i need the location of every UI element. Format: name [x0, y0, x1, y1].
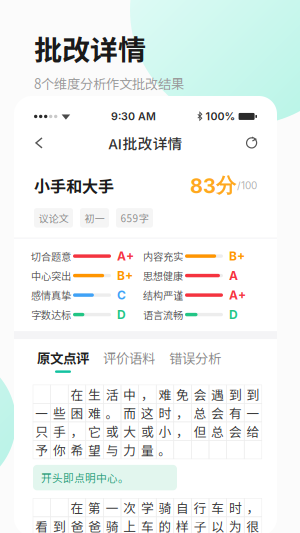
staticText: 爸: [88, 517, 101, 533]
staticText: 只: [35, 422, 48, 440]
staticText: D: [117, 307, 126, 322]
staticText: 些: [53, 403, 66, 422]
staticText: 困: [70, 403, 83, 422]
button[interactable]: 评价语料: [96, 348, 162, 373]
staticText: 自: [176, 498, 189, 517]
staticText: 力: [123, 440, 136, 459]
staticText: 评价语料: [103, 348, 155, 367]
staticText: 或: [141, 422, 154, 440]
staticText: 看: [35, 517, 48, 533]
staticText: 手: [53, 422, 66, 440]
staticText: 与: [106, 440, 119, 459]
staticText: 活: [106, 385, 119, 403]
staticText: 。: [158, 440, 171, 459]
staticText: 的: [158, 517, 171, 533]
staticText: 有: [229, 403, 242, 422]
staticText: 感情真挚: [31, 288, 71, 302]
button[interactable]: 错误分析: [162, 348, 228, 373]
staticText: 到: [229, 385, 242, 403]
staticText: 难: [158, 385, 171, 403]
staticText: 生: [88, 385, 101, 403]
staticText: ，: [176, 403, 189, 422]
staticText: B+: [229, 249, 245, 263]
staticText: 会: [211, 403, 224, 422]
staticText: ，: [141, 385, 154, 403]
staticText: 语言流畅: [143, 307, 183, 322]
staticText: 到: [53, 517, 66, 533]
staticText: 在: [70, 498, 83, 517]
staticText: A: [229, 268, 238, 283]
staticText: 你: [53, 440, 66, 459]
staticText: 它: [88, 422, 101, 440]
staticText: 切合题意: [31, 249, 71, 263]
staticText: 骑: [106, 517, 119, 533]
staticText: 而: [123, 403, 136, 422]
staticText: 大: [123, 422, 136, 440]
staticText: 思想健康: [143, 268, 183, 283]
staticText: 一: [106, 498, 119, 517]
staticText: 但: [194, 422, 207, 440]
staticText: 遇: [211, 385, 224, 403]
staticText: 小手和大手: [34, 174, 114, 197]
staticText: 上: [123, 517, 136, 533]
staticText: 会: [194, 385, 207, 403]
staticText: 结构严谨: [143, 288, 183, 302]
staticText: 100%: [206, 110, 236, 123]
staticText: ，: [176, 422, 189, 440]
staticText: 中心突出: [31, 268, 71, 283]
staticText: 批改详情: [34, 28, 146, 68]
staticText: 小: [158, 422, 171, 440]
staticText: 一: [246, 403, 259, 422]
staticText: 望: [88, 440, 101, 459]
staticText: 时: [158, 403, 171, 422]
staticText: ，: [246, 498, 259, 517]
staticText: 学: [141, 498, 154, 517]
staticText: A+: [229, 288, 246, 302]
staticText: 总: [194, 403, 207, 422]
staticText: 。: [106, 403, 119, 422]
staticText: 8个维度分析作文批改结果: [34, 73, 184, 93]
staticText: 总: [211, 422, 224, 440]
staticText: AI批改详情: [108, 132, 182, 153]
staticText: 免: [176, 385, 189, 403]
staticText: 希: [70, 440, 83, 459]
button[interactable]: Back: [26, 131, 52, 155]
staticText: 659字: [120, 211, 148, 225]
staticText: 这: [141, 403, 154, 422]
staticText: 内容充实: [143, 249, 183, 263]
staticText: ，: [70, 422, 83, 440]
staticText: 子: [194, 517, 207, 533]
staticText: 字数达标: [31, 307, 71, 322]
staticText: 83分: [190, 173, 236, 198]
staticText: 为: [229, 517, 242, 533]
staticText: 或: [106, 422, 119, 440]
staticText: 以: [211, 517, 224, 533]
staticText: 很: [246, 517, 259, 533]
staticText: 骑: [158, 498, 171, 517]
staticText: 次: [123, 498, 136, 517]
staticText: 原文点评: [37, 348, 89, 367]
staticText: [35, 498, 48, 517]
staticText: 一: [35, 403, 48, 422]
staticText: 给: [246, 422, 259, 440]
staticText: D: [229, 307, 238, 322]
staticText: 中: [123, 385, 136, 403]
staticText: 在: [70, 385, 83, 403]
staticText: A+: [117, 249, 134, 263]
staticText: 样: [176, 517, 189, 533]
staticText: 量: [141, 440, 154, 459]
staticText: [53, 498, 66, 517]
staticText: 错误分析: [169, 348, 221, 367]
staticText: B+: [117, 268, 133, 283]
staticText: /100: [237, 179, 257, 192]
staticText: 到: [246, 385, 259, 403]
staticText: C: [117, 288, 126, 302]
staticText: 车: [141, 517, 154, 533]
staticText: 车: [211, 498, 224, 517]
staticText: 初一: [84, 211, 104, 225]
button[interactable]: 原文点评: [30, 348, 96, 373]
button[interactable]: Refresh: [239, 131, 265, 155]
staticText: 开头即点明中心。: [41, 470, 129, 485]
staticText: 议论文: [38, 211, 68, 225]
